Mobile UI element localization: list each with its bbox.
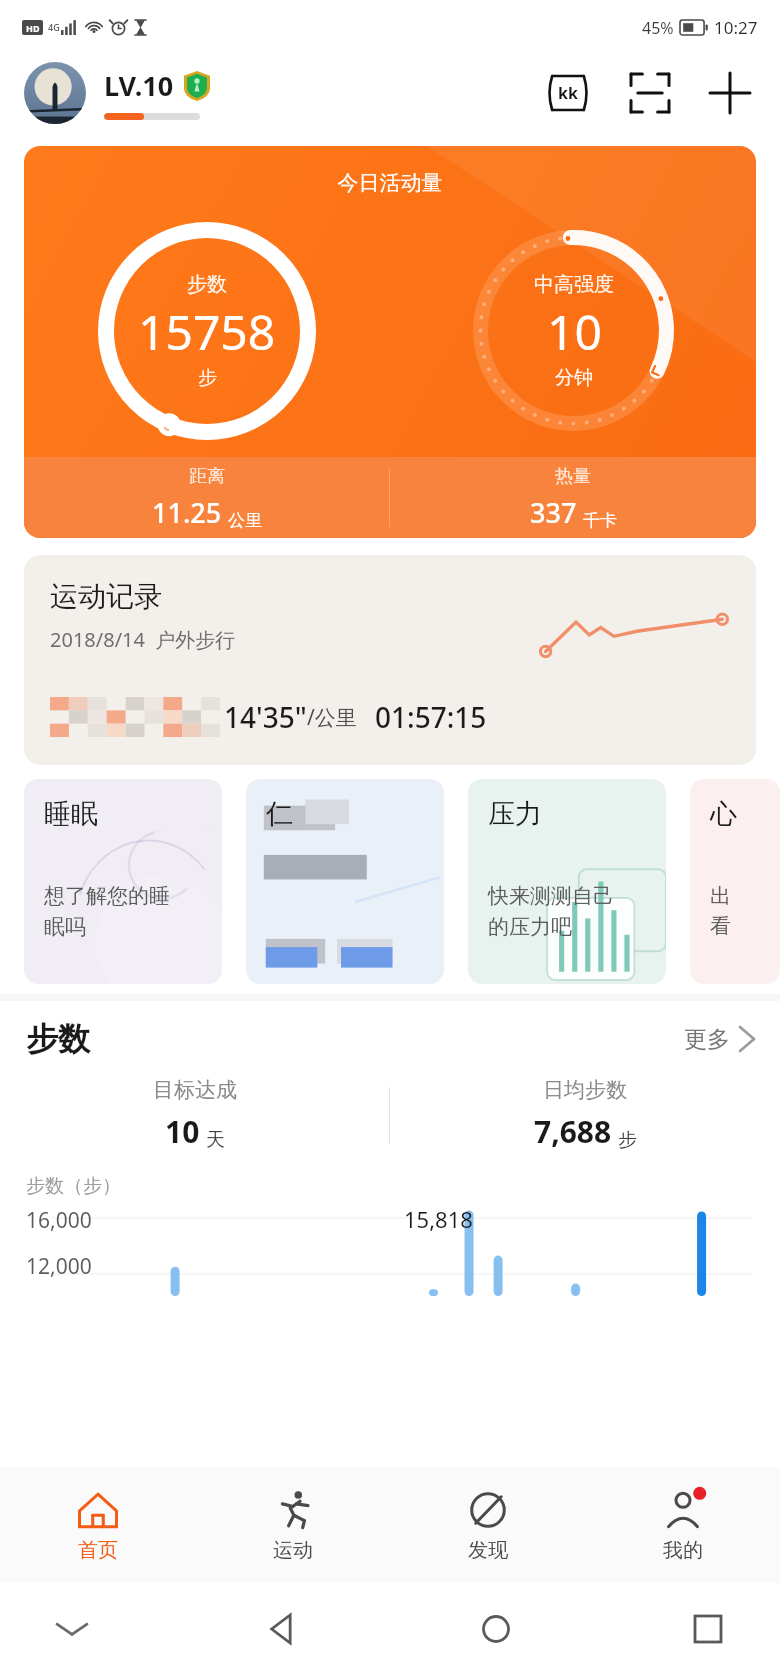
- staticText: 想了解您的睡 眠吗: [44, 883, 170, 940]
- button[interactable]: 运动: [195, 1467, 390, 1583]
- staticText: 4G: [48, 21, 60, 33]
- staticText: 45%: [642, 17, 674, 39]
- staticText: 15758: [138, 299, 276, 364]
- staticText: 仁: [266, 797, 293, 831]
- button[interactable]: LV.10: [104, 67, 210, 120]
- staticText: 压力: [488, 797, 542, 831]
- staticText: 心: [710, 797, 737, 831]
- button[interactable]: Scan: [624, 67, 676, 119]
- staticText: 01:57:15: [375, 698, 487, 736]
- staticText: 16,000: [26, 1206, 92, 1235]
- staticText: 12,000: [26, 1252, 92, 1281]
- staticText: 10: [165, 1111, 200, 1152]
- staticText: kk: [558, 82, 578, 104]
- staticText: 发现: [468, 1538, 508, 1563]
- button[interactable]: KK card: [542, 67, 594, 119]
- staticText: 目标达成: [153, 1077, 237, 1103]
- staticText: /公里: [307, 703, 357, 732]
- staticText: 天: [206, 1128, 225, 1152]
- staticText: 337: [530, 494, 577, 531]
- staticText: 10: [547, 299, 602, 364]
- button[interactable]: 我的: [585, 1467, 780, 1583]
- button[interactable]: 睡眠: [24, 779, 222, 984]
- staticText: 快来测测自己 的压力吧: [488, 883, 614, 940]
- button[interactable]: 心: [690, 779, 780, 984]
- staticText: LV.10: [104, 67, 174, 104]
- staticText: 中高强度: [534, 272, 614, 297]
- staticText: 步: [198, 366, 217, 390]
- staticText: 今日活动量: [24, 170, 756, 196]
- staticText: 我的: [663, 1538, 703, 1563]
- button[interactable]: Profile: [24, 62, 86, 124]
- staticText: 首页: [78, 1538, 118, 1563]
- staticText: 分钟: [555, 366, 593, 390]
- staticText: 更多: [684, 1025, 730, 1054]
- button[interactable]: Recents: [682, 1603, 734, 1655]
- staticText: 公里: [228, 510, 262, 531]
- staticText: 15,818: [404, 1204, 473, 1234]
- staticText: 7,688: [534, 1111, 612, 1152]
- staticText: 11.25: [152, 494, 222, 531]
- staticText: 步数（步）: [26, 1174, 121, 1198]
- staticText: HD: [26, 22, 40, 34]
- button[interactable]: Hide: [46, 1603, 98, 1655]
- staticText: 热量: [555, 465, 591, 488]
- staticText: 运动: [273, 1538, 313, 1563]
- staticText: 2018/8/14 户外步行: [50, 626, 236, 653]
- button[interactable]: 今日活动量: [24, 146, 756, 538]
- staticText: 睡眠: [44, 797, 98, 831]
- staticText: 运动记录: [50, 579, 162, 614]
- staticText: 出 看: [710, 883, 731, 940]
- button[interactable]: Back: [258, 1603, 310, 1655]
- staticText: 日均步数: [543, 1077, 627, 1103]
- staticText: 步数: [26, 1019, 90, 1059]
- button[interactable]: 步数: [26, 1019, 754, 1059]
- button[interactable]: 运动记录: [24, 555, 756, 765]
- staticText: 千卡: [583, 510, 617, 531]
- button[interactable]: 仁: [246, 779, 444, 984]
- button[interactable]: Add: [704, 67, 756, 119]
- staticText: 14'35": [224, 698, 307, 736]
- button[interactable]: 压力: [468, 779, 666, 984]
- staticText: 步: [618, 1128, 637, 1152]
- button[interactable]: 首页: [0, 1467, 195, 1583]
- button[interactable]: Home: [470, 1603, 522, 1655]
- staticText: 10:27: [714, 16, 758, 39]
- button[interactable]: 发现: [390, 1467, 585, 1583]
- staticText: 步数: [187, 272, 227, 297]
- staticText: 距离: [189, 465, 225, 488]
